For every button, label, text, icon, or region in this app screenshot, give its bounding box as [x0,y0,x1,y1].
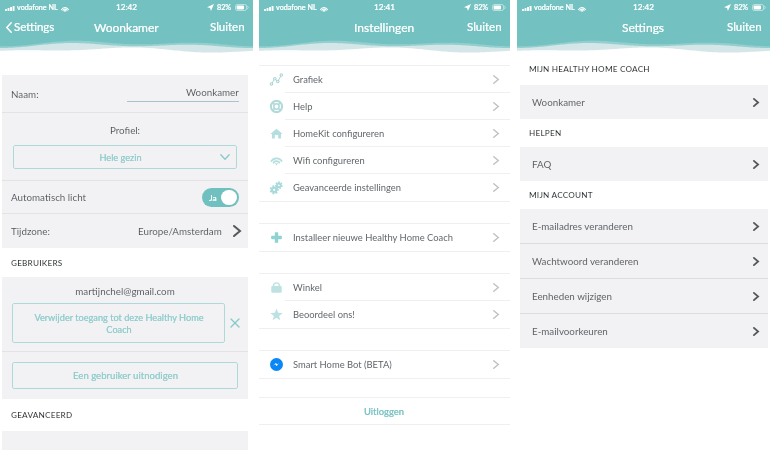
button[interactable]: Naam: [2,75,248,112]
button[interactable]: Wachtwoord veranderen [520,244,768,278]
button[interactable]: Een gebruiker uitnodigen [12,362,238,389]
button[interactable]: Eenheden wijzigen [520,279,768,313]
button[interactable]: Automatisch licht [2,181,248,213]
staticText: Naam: [11,88,39,100]
staticText: GEBRUIKERS [11,258,63,268]
button[interactable]: E-mailvoorkeuren [520,314,768,348]
button[interactable]: Sluiten [719,17,770,37]
button[interactable]: HomeKit configureren [259,120,510,146]
staticText: Automatisch licht [11,191,87,203]
button[interactable]: Grafiek [259,66,510,92]
staticText: Smart Home Bot (BETA) [293,359,392,370]
button[interactable]: Uitloggen [259,398,510,424]
staticText: Geavanceerde instellingen [293,182,401,193]
staticText: Wifi configureren [293,155,365,166]
staticText: 82% [217,3,232,12]
button[interactable]: Hele gezin [13,145,237,169]
button[interactable]: Wifi configureren [259,147,510,173]
button[interactable]: Geavanceerde instellingen [259,174,510,201]
staticText: Settings [14,20,55,34]
staticText: Eenheden wijzigen [532,290,612,302]
staticText: Hele gezin [21,152,220,163]
staticText: Verwijder toegang tot deze Healthy Home … [34,312,204,335]
staticText: Settings [622,20,665,34]
staticText: 82% [474,3,489,12]
staticText: HELPEN [529,128,562,138]
button[interactable]: E-mailadres veranderen [520,209,768,243]
staticText: HomeKit configureren [293,128,385,139]
staticText: 12:41 [374,2,396,12]
staticText: Ja [209,193,217,203]
staticText: Help [293,101,313,112]
button[interactable]: Settings [0,17,63,37]
staticText: Een gebruiker uitnodigen [73,370,178,382]
staticText: Woonkamer [94,20,159,34]
staticText: 82% [734,3,749,12]
staticText: Profiel: [2,124,248,136]
button[interactable]: Sluiten [202,17,253,37]
button[interactable]: Installeer nieuwe Healthy Home Coach [259,224,510,251]
staticText: Instellingen [354,20,415,34]
button[interactable]: Verwijder toegang tot deze Healthy Home … [12,303,225,343]
staticText: FAQ [532,158,552,170]
staticText: MIJN ACCOUNT [529,190,593,200]
staticText: E-mailvoorkeuren [532,325,608,337]
staticText: MIJN HEALTHY HOME COACH [529,64,650,74]
staticText: E-mailadres veranderen [532,220,633,232]
staticText: Woonkamer [186,86,239,98]
staticText: vodafone NL [17,3,58,12]
staticText: Europe/Amsterdam [138,225,222,237]
staticText: Grafiek [293,74,323,85]
staticText: Beoordeel ons! [293,309,355,320]
staticText: Wachtwoord veranderen [532,255,639,267]
staticText: Woonkamer [532,96,585,108]
button[interactable]: Tijdzone: [2,214,248,248]
staticText: Tijdzone: [11,225,50,237]
staticText: Winkel [293,282,322,293]
staticText: Uitloggen [364,406,405,417]
staticText: vodafone NL [276,3,317,12]
button[interactable]: Help [259,93,510,119]
staticText: 12:42 [633,2,655,12]
staticText: vodafone NL [534,3,575,12]
button[interactable]: Winkel [259,274,510,300]
button[interactable]: Smart Home Bot (BETA) [259,351,510,378]
button[interactable]: Verwijderen [225,303,245,343]
staticText: GEAVANCEERD [11,410,73,420]
staticText: 12:42 [116,2,138,12]
staticText: Installeer nieuwe Healthy Home Coach [293,232,453,243]
button[interactable]: Woonkamer [520,85,768,119]
button[interactable]: Beoordeel ons! [259,301,510,328]
button[interactable]: Sluiten [459,17,510,37]
button[interactable]: Automatisch licht aan [202,188,239,207]
button[interactable]: FAQ [520,147,768,181]
staticText: martijnchel@gmail.com [2,285,248,297]
